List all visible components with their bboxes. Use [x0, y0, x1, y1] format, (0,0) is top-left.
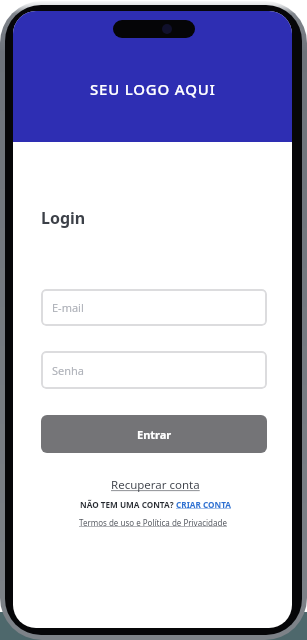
staticText: E-mail [52, 300, 84, 315]
staticText: SEU LOGO AQUI [90, 79, 216, 99]
button[interactable]: E-mail [41, 289, 267, 326]
staticText: Login [41, 207, 86, 229]
button[interactable]: Senha [41, 351, 267, 389]
button[interactable]: Termos de uso e Política de Privacidade [79, 517, 227, 528]
button[interactable]: Entrar [41, 415, 267, 453]
button[interactable]: CRIAR CONTA [176, 499, 232, 510]
staticText: Senha [52, 363, 85, 378]
staticText: NÃO TEM UMA CONTA? [80, 499, 176, 510]
staticText: Entrar [137, 427, 172, 442]
button[interactable]: Recuperar conta [111, 477, 200, 493]
